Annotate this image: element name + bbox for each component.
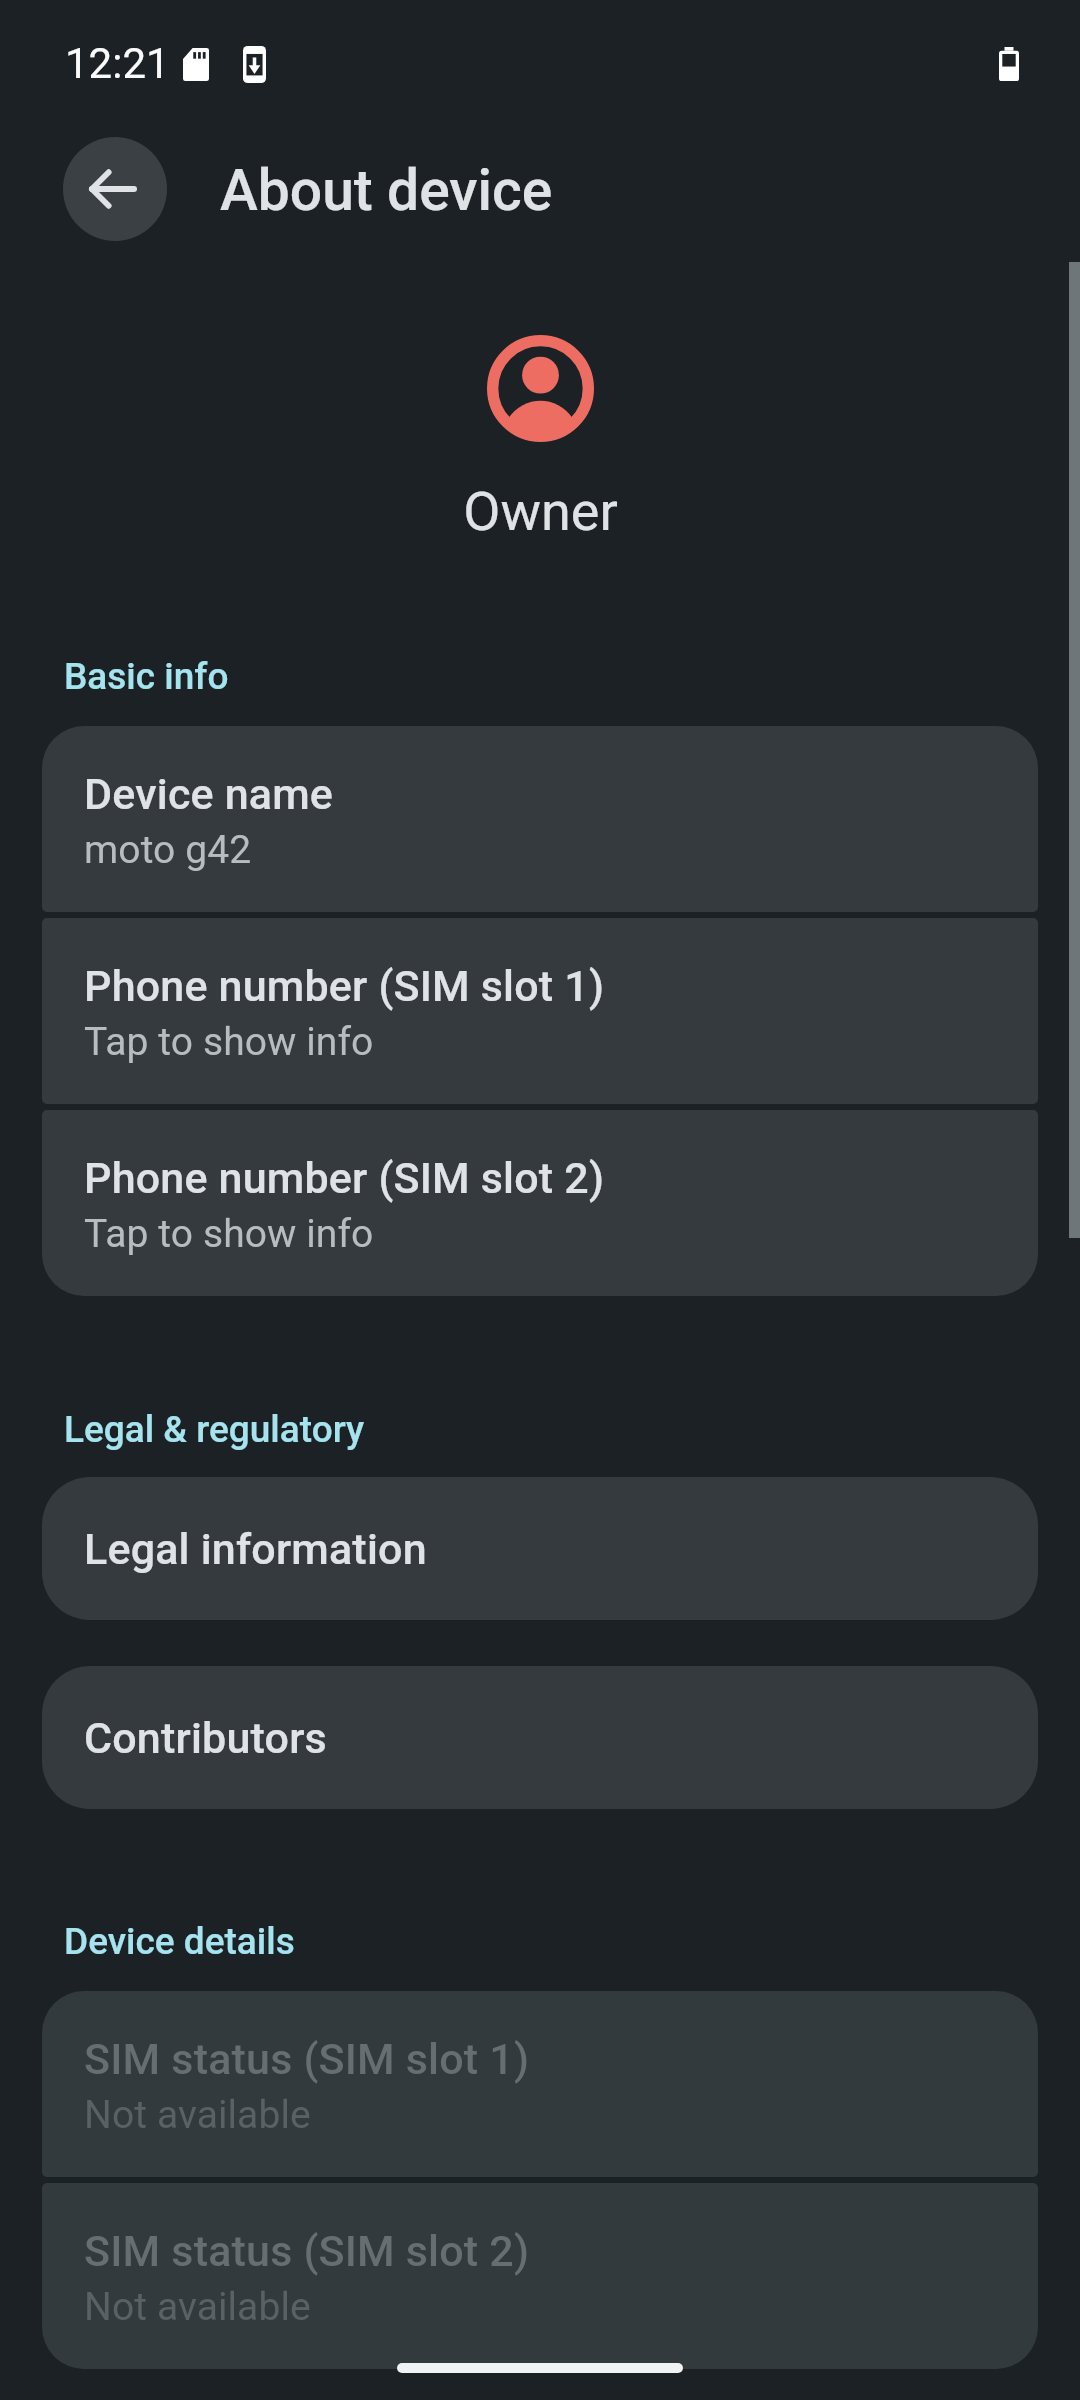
staticText: Device details — [64, 1920, 295, 1963]
button[interactable]: Phone number (SIM slot 1) — [42, 918, 1038, 1104]
staticText: moto g42 — [84, 827, 252, 873]
staticText: Tap to show info — [84, 1019, 374, 1065]
staticText: SIM status (SIM slot 1) — [84, 2034, 530, 2084]
staticText: Phone number (SIM slot 2) — [84, 1153, 605, 1203]
staticText: Owner — [463, 480, 618, 543]
staticText: Not available — [84, 2284, 311, 2330]
staticText: Not available — [84, 2092, 311, 2138]
staticText: 12:21 — [65, 39, 170, 88]
staticText: Legal information — [84, 1524, 427, 1574]
button[interactable]: SIM status (SIM slot 1) — [42, 1991, 1038, 2177]
button[interactable]: SIM status (SIM slot 2) — [42, 2183, 1038, 2369]
staticText: Phone number (SIM slot 1) — [84, 961, 605, 1011]
staticText: Tap to show info — [84, 1211, 374, 1257]
staticText: SIM status (SIM slot 2) — [84, 2226, 530, 2276]
button[interactable]: Phone number (SIM slot 2) — [42, 1110, 1038, 1296]
staticText: Legal & regulatory — [64, 1408, 365, 1451]
button[interactable]: Legal information — [42, 1477, 1038, 1620]
staticText: Device name — [84, 769, 334, 819]
staticText: Contributors — [84, 1713, 327, 1763]
button[interactable]: Contributors — [42, 1666, 1038, 1809]
staticText: Basic info — [64, 655, 229, 698]
staticText: About device — [220, 157, 553, 224]
button[interactable]: Device name — [42, 726, 1038, 912]
button[interactable]: Back — [63, 137, 167, 241]
